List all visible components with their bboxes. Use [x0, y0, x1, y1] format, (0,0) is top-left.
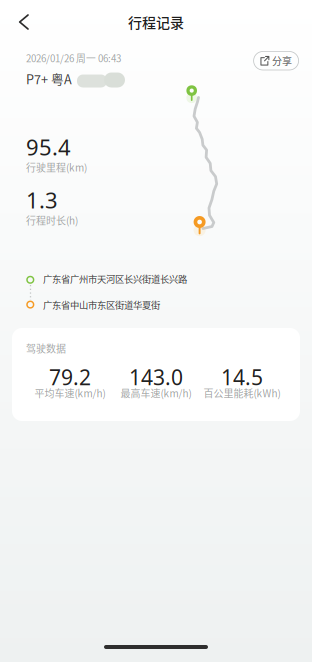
staticText: 分享	[272, 53, 292, 68]
staticText: 行驶里程(km)	[26, 160, 87, 174]
staticText: 广东省广州市天河区长兴街道长兴路	[43, 272, 187, 285]
staticText: 行程时长(h)	[26, 213, 78, 227]
button[interactable]: 分享	[254, 51, 299, 70]
staticText: 广东省中山市东区街道华夏街	[43, 298, 160, 311]
staticText: 1.3	[26, 185, 58, 215]
button[interactable]: Back	[6, 4, 42, 40]
staticText: 95.4	[26, 132, 71, 162]
staticText: P7+ 粤A	[26, 69, 72, 88]
staticText: 最高车速(km/h)	[120, 386, 191, 400]
staticText: 驾驶数据	[26, 341, 66, 355]
staticText: 79.2	[49, 363, 91, 391]
staticText: 百公里能耗(kWh)	[203, 386, 280, 400]
staticText: 143.0	[129, 363, 183, 391]
staticText: 平均车速(km/h)	[34, 386, 105, 400]
staticText: 14.5	[221, 363, 263, 391]
staticText: 2026/01/26 周一 06:43	[26, 51, 121, 65]
staticText: 行程记录	[128, 12, 184, 32]
